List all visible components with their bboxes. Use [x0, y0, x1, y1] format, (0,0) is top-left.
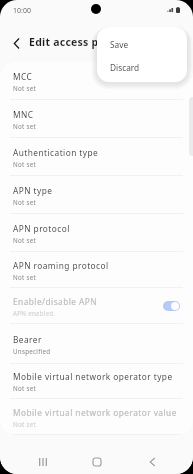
staticText: 10:00 — [13, 6, 31, 16]
staticText: Not set — [13, 84, 36, 92]
staticText: Not set — [13, 122, 36, 130]
staticText: Save — [110, 39, 129, 50]
button[interactable]: Enable/disable APN — [0, 288, 193, 324]
button[interactable]: MNC — [0, 100, 193, 138]
staticText: Discard — [110, 62, 140, 73]
button[interactable]: APN roaming protocol — [0, 252, 193, 288]
button[interactable]: Back — [139, 449, 165, 474]
staticText: Not set — [13, 273, 36, 281]
staticText: Authentication type — [13, 147, 99, 158]
button[interactable]: APN protocol — [0, 214, 193, 252]
button[interactable]: Home — [84, 449, 110, 474]
staticText: Not set — [13, 384, 36, 392]
staticText: Mobile virtual network operator type — [13, 371, 173, 382]
staticText: Enable/disable APN — [13, 296, 98, 307]
button[interactable]: APN type — [0, 176, 193, 214]
button[interactable]: Discard — [97, 56, 187, 79]
staticText: APN protocol — [13, 223, 70, 234]
staticText: MCC — [13, 71, 33, 82]
button[interactable]: Save — [97, 33, 187, 56]
staticText: APN roaming protocol — [13, 260, 109, 271]
staticText: Bearer — [13, 334, 42, 345]
staticText: Mobile virtual network operator value — [13, 407, 177, 418]
staticText: Not set — [13, 236, 36, 244]
button[interactable]: Bearer — [0, 324, 193, 364]
button[interactable]: Navigate up — [3, 30, 29, 56]
staticText: Not set — [13, 160, 36, 168]
staticText: Not set — [13, 198, 36, 206]
button[interactable]: Mobile virtual network operator value — [0, 399, 193, 435]
button[interactable]: Authentication type — [0, 138, 193, 176]
staticText: Not set — [13, 420, 36, 428]
staticText: Unspecified — [13, 347, 51, 355]
button[interactable]: Mobile virtual network operator type — [0, 364, 193, 399]
staticText: Edit access point — [29, 35, 121, 49]
button[interactable]: Recents — [30, 449, 56, 474]
button[interactable]: MCC — [0, 62, 193, 100]
staticText: MNC — [13, 109, 34, 120]
staticText: APN enabled. — [13, 309, 56, 317]
staticText: APN type — [13, 185, 53, 196]
button[interactable]: Enable APN toggle — [163, 301, 180, 311]
